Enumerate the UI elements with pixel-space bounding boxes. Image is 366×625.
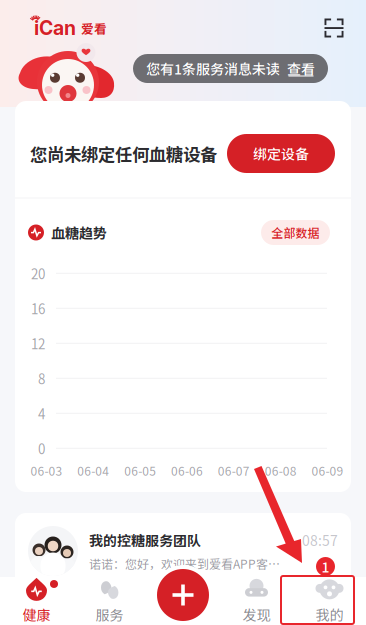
staticText: 0 — [38, 439, 45, 458]
staticText: 8 — [38, 369, 45, 388]
staticText: 06-04 — [77, 462, 109, 479]
staticText: 06-09 — [312, 462, 344, 479]
staticText: iCan — [34, 16, 76, 40]
staticText: 爱看 — [81, 19, 107, 37]
staticText: 1 — [321, 556, 329, 577]
staticText: 12 — [31, 334, 45, 353]
staticText: 06-03 — [30, 462, 62, 479]
button[interactable]: 我的控糖服务团队 — [15, 513, 351, 593]
staticText: 发现 — [242, 604, 270, 625]
button[interactable]: Add — [153, 565, 213, 625]
staticText: 08:57 — [302, 530, 338, 550]
staticText: 您尚未绑定任何血糖设备 — [30, 141, 217, 166]
staticText: 06-08 — [265, 462, 297, 479]
staticText: 诺诺：您好，欢迎来到爱看APP客… — [89, 555, 280, 572]
staticText: 查看 — [287, 58, 315, 79]
button[interactable]: 绑定设备 — [227, 134, 335, 173]
button[interactable]: 全部数据 — [261, 220, 330, 245]
staticText: 您有1条服务消息未读 — [146, 58, 280, 79]
button[interactable]: 您有1条服务消息未读 — [133, 54, 328, 83]
button[interactable]: 健康 — [0, 577, 73, 625]
staticText: 我的控糖服务团队 — [89, 530, 201, 550]
staticText: 健康 — [22, 604, 50, 625]
staticText: 06-06 — [171, 462, 203, 479]
staticText: 血糖趋势 — [51, 222, 107, 243]
staticText: 06-05 — [124, 462, 156, 479]
button[interactable]: 我的 — [293, 577, 366, 625]
staticText: 绑定设备 — [253, 143, 309, 164]
button[interactable]: Scan — [319, 13, 349, 43]
button[interactable]: 发现 — [220, 577, 293, 625]
staticText: 20 — [31, 264, 45, 283]
staticText: 我的 — [315, 604, 343, 625]
button[interactable]: 服务 — [73, 577, 146, 625]
staticText: 4 — [38, 404, 45, 423]
staticText: 全部数据 — [271, 224, 319, 241]
staticText: 16 — [31, 299, 45, 318]
staticText: 06-07 — [218, 462, 250, 479]
staticText: 服务 — [95, 604, 123, 625]
